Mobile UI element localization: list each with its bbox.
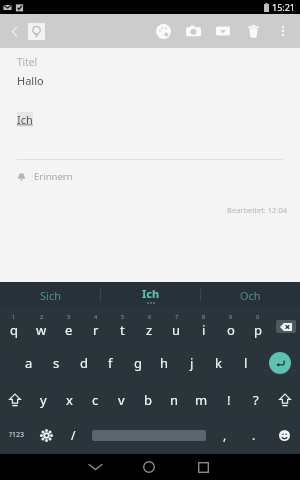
staticText: f	[108, 354, 113, 372]
staticText: 2	[40, 313, 44, 320]
staticText: 4	[94, 313, 98, 320]
button[interactable]: 8	[190, 308, 217, 344]
staticText: 3	[67, 313, 71, 320]
staticText: t	[120, 321, 125, 339]
button[interactable]: ,	[210, 418, 239, 452]
button[interactable]: Enter	[259, 344, 300, 381]
button[interactable]: l	[232, 344, 259, 381]
button[interactable]: Erinnern	[16, 170, 300, 183]
button[interactable]: Ich	[17, 112, 33, 127]
button[interactable]: j	[178, 344, 205, 381]
button[interactable]: 5	[109, 308, 136, 344]
staticText: s	[53, 354, 60, 372]
button[interactable]: Back	[4, 21, 24, 41]
staticText: ?123	[9, 430, 25, 440]
button[interactable]: 1	[0, 308, 28, 344]
button[interactable]: Hallo	[17, 73, 44, 88]
button[interactable]: Hide keyboard	[69, 454, 122, 480]
button[interactable]: n	[161, 381, 188, 418]
staticText: n	[170, 391, 179, 409]
staticText: x	[66, 391, 73, 409]
staticText: c	[92, 391, 99, 409]
staticText: y	[40, 391, 47, 409]
button[interactable]: Shift	[0, 381, 30, 418]
button[interactable]: .	[239, 418, 268, 452]
staticText: r	[93, 321, 99, 339]
button[interactable]: Ich	[101, 282, 200, 308]
staticText: Ich	[17, 112, 33, 127]
staticText: Titel	[17, 55, 37, 69]
staticText: k	[215, 354, 222, 372]
staticText: p	[254, 321, 262, 339]
staticText: 5	[121, 313, 125, 320]
staticText: h	[160, 354, 169, 372]
staticText: !	[227, 391, 231, 409]
button[interactable]: 6	[136, 308, 163, 344]
button[interactable]: 3	[55, 308, 82, 344]
button[interactable]: Sich	[0, 282, 100, 308]
staticText: 7	[175, 313, 179, 320]
button[interactable]: b	[134, 381, 161, 418]
staticText: /	[71, 427, 76, 443]
button[interactable]: Delete	[238, 14, 268, 48]
button[interactable]: y	[30, 381, 56, 418]
staticText: o	[227, 321, 235, 339]
button[interactable]: Take photo	[178, 14, 208, 48]
button[interactable]: Emoji	[268, 418, 300, 452]
button[interactable]: 4	[82, 308, 109, 344]
button[interactable]: Home	[122, 454, 176, 480]
button[interactable]: !	[215, 381, 242, 418]
button[interactable]: v	[108, 381, 134, 418]
staticText: l	[244, 354, 248, 372]
button[interactable]: s	[43, 344, 70, 381]
button[interactable]: a	[15, 344, 43, 381]
button[interactable]: c	[82, 381, 108, 418]
button[interactable]: Archive	[208, 14, 238, 48]
button[interactable]: 0	[244, 308, 271, 344]
staticText: q	[10, 321, 18, 339]
button[interactable]: f	[97, 344, 124, 381]
button[interactable]: 9	[217, 308, 244, 344]
button[interactable]: h	[151, 344, 178, 381]
staticText: ,	[223, 427, 227, 443]
staticText: g	[134, 354, 142, 372]
button[interactable]: Change color	[148, 14, 178, 48]
button[interactable]: Recents	[176, 454, 230, 480]
staticText: u	[172, 321, 181, 339]
button[interactable]: d	[70, 344, 97, 381]
button[interactable]: g	[124, 344, 151, 381]
staticText: e	[65, 321, 73, 339]
button[interactable]: 7	[163, 308, 190, 344]
staticText: d	[80, 354, 88, 372]
staticText: Bearbeitet: 12:04	[0, 205, 287, 215]
staticText: Erinnern	[34, 170, 73, 183]
button[interactable]: More options	[268, 14, 298, 48]
button[interactable]: ?	[242, 381, 269, 418]
staticText: m	[195, 391, 208, 409]
button[interactable]: Keyboard settings	[33, 418, 60, 452]
staticText: Sich	[40, 288, 61, 303]
staticText: 15:21	[272, 1, 296, 13]
button[interactable]: ?123	[0, 418, 33, 452]
button[interactable]: m	[188, 381, 215, 418]
staticText: Och	[240, 288, 261, 303]
button[interactable]: Och	[201, 282, 300, 308]
staticText: b	[144, 391, 152, 409]
button[interactable]: Space	[87, 418, 210, 452]
button[interactable]: 2	[28, 308, 55, 344]
staticText: 8	[202, 313, 206, 320]
staticText: Ich	[142, 286, 160, 301]
button[interactable]: Shift	[269, 381, 300, 418]
button[interactable]: k	[205, 344, 232, 381]
staticText: ?	[253, 391, 259, 409]
staticText: 6	[148, 313, 152, 320]
staticText: v	[118, 391, 125, 409]
button[interactable]: /	[60, 418, 87, 452]
staticText: 0	[256, 313, 260, 320]
staticText: .	[252, 427, 256, 443]
button[interactable]: x	[56, 381, 82, 418]
staticText: 9	[229, 313, 233, 320]
button[interactable]: Backspace	[271, 308, 300, 344]
staticText: w	[36, 321, 47, 339]
button[interactable]: Keep	[24, 19, 48, 43]
